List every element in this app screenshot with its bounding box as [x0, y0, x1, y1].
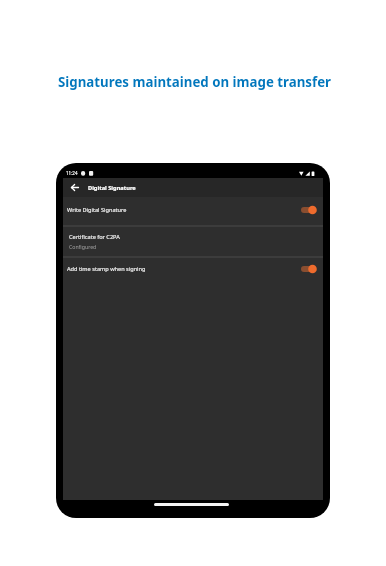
staticText: 11:24: [66, 170, 78, 176]
staticText: Add time stamp when signing: [67, 265, 146, 273]
staticText: Write Digital Signature: [67, 206, 127, 214]
staticText: Signatures maintained on image transfer: [58, 73, 332, 91]
button[interactable]: Digital Signature: [63, 178, 323, 197]
staticText: Certificate for C2PA: [69, 233, 120, 241]
button[interactable]: Add time stamp when signing: [63, 257, 323, 280]
staticText: Configured: [69, 243, 97, 250]
button[interactable]: Certificate for C2PA: [63, 227, 323, 256]
button[interactable]: Write Digital Signature: [63, 197, 323, 223]
staticText: Digital Signature: [88, 184, 136, 192]
